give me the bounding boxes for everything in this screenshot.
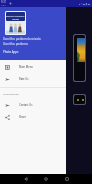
staticText: wisala: [12, 17, 19, 20]
staticText: Ganitha padama: [3, 42, 28, 46]
staticText: 9:31: [1, 0, 7, 4]
staticText: Share: [19, 115, 27, 119]
staticText: Photo Apps: [3, 50, 19, 54]
button[interactable]: Rate Us: [0, 73, 66, 85]
staticText: ▴ • ▬ ▮ ▬: [79, 2, 91, 6]
other: Home: [44, 177, 48, 181]
staticText: Contact Us: [19, 103, 33, 107]
staticText: Ganitha padamala wisala: [3, 37, 41, 41]
button[interactable]: Share: [0, 111, 66, 123]
other: Back: [24, 177, 28, 181]
button[interactable]: Main Menu: [0, 61, 66, 73]
staticText: Rate Us: [19, 77, 29, 81]
staticText: Wed: [1, 4, 6, 7]
button[interactable]: Contact Us: [0, 99, 66, 111]
other: Recents: [65, 177, 69, 181]
staticText: Main Menu: [19, 65, 33, 69]
staticText: ganitha padama: [6, 14, 25, 17]
staticText: Communicate: [3, 92, 19, 95]
